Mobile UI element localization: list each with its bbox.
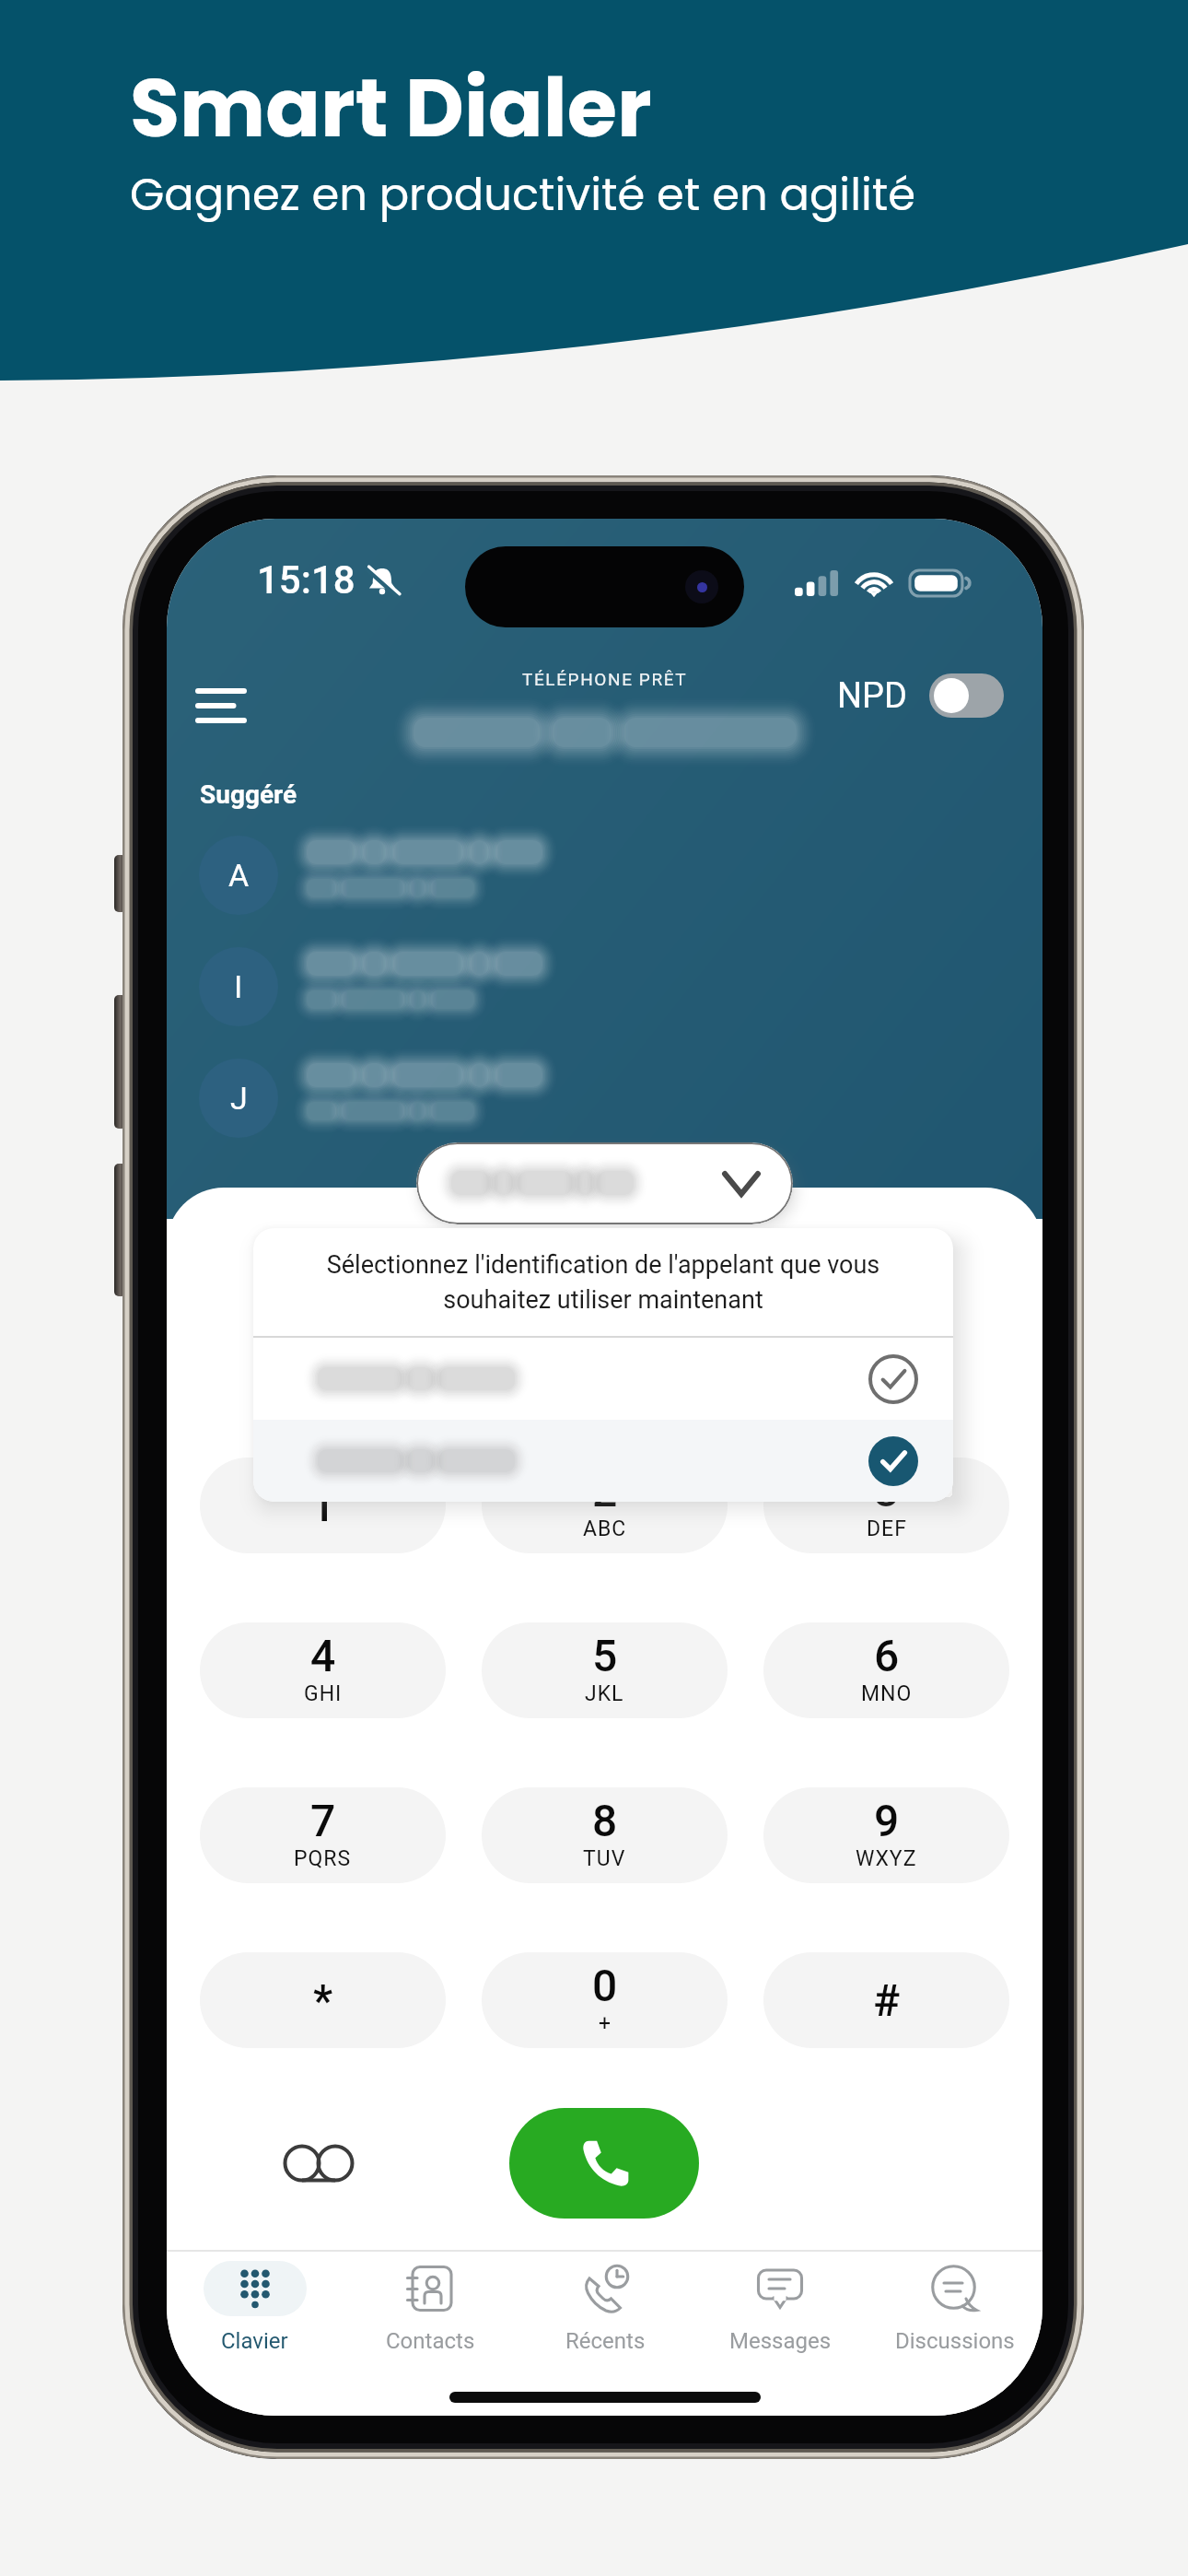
button[interactable]: 8 xyxy=(482,1787,728,1883)
staticText: ABC xyxy=(583,1516,627,1541)
staticText: 2 xyxy=(592,1465,618,1516)
button[interactable] xyxy=(253,1338,953,1420)
staticText: GHI xyxy=(304,1681,343,1706)
button[interactable]: 5 xyxy=(482,1622,728,1718)
button[interactable]: Appeler xyxy=(509,2108,699,2219)
staticText: 3 xyxy=(874,1465,900,1516)
button[interactable]: Clavier xyxy=(167,2252,343,2381)
staticText: 5 xyxy=(592,1630,618,1681)
staticText: NPD xyxy=(837,675,908,717)
button[interactable]: 3 xyxy=(763,1458,1009,1553)
staticText: I xyxy=(234,968,243,1005)
staticText: 0 xyxy=(592,1960,618,2011)
staticText: 6 xyxy=(874,1630,900,1681)
staticText: A xyxy=(228,857,250,894)
staticText: * xyxy=(313,1974,333,2026)
staticText: TÉLÉPHONE PRÊT xyxy=(522,669,688,689)
staticText: Récents xyxy=(565,2328,646,2354)
staticText: DEF xyxy=(867,1516,907,1541)
button[interactable] xyxy=(253,1420,953,1502)
staticText: J xyxy=(230,1080,248,1117)
button[interactable]: Menu xyxy=(181,666,261,745)
staticText: 1 xyxy=(310,1480,336,1531)
button[interactable]: 7 xyxy=(200,1787,446,1883)
button[interactable]: NPD xyxy=(837,664,1004,727)
button[interactable]: 0 xyxy=(482,1952,728,2048)
staticText: Gagnez en productivité et en agilité xyxy=(130,164,916,226)
staticText: Contacts xyxy=(386,2328,475,2354)
staticText: 15:18 xyxy=(257,557,355,603)
staticText: 4 xyxy=(310,1630,336,1681)
staticText: Messages xyxy=(729,2328,832,2354)
staticText: WXYZ xyxy=(856,1846,917,1871)
staticText: TUV xyxy=(583,1846,626,1871)
button[interactable]: I xyxy=(167,931,1042,1042)
button[interactable]: * xyxy=(200,1952,446,2048)
button[interactable]: 9 xyxy=(763,1787,1009,1883)
staticText: 8 xyxy=(592,1795,618,1846)
staticText: PQRS xyxy=(294,1846,352,1871)
button[interactable]: Récents xyxy=(518,2252,693,2381)
button[interactable]: 6 xyxy=(763,1622,1009,1718)
staticText: Discussions xyxy=(895,2328,1015,2354)
button[interactable]: 1 xyxy=(200,1458,446,1553)
staticText: Sélectionnez l'identification de l'appel… xyxy=(277,1250,929,1315)
staticText: Clavier xyxy=(221,2328,288,2354)
button[interactable]: Messagerie vocale xyxy=(274,2119,363,2207)
staticText: + xyxy=(599,2011,612,2036)
button[interactable]: 4 xyxy=(200,1622,446,1718)
staticText: Smart Dialer xyxy=(130,52,652,165)
button[interactable]: A xyxy=(167,820,1042,931)
button[interactable]: Messages xyxy=(693,2252,868,2381)
staticText: Suggéré xyxy=(200,779,297,810)
button[interactable]: Discussions xyxy=(868,2252,1042,2381)
button[interactable]: J xyxy=(167,1043,1042,1153)
button[interactable] xyxy=(416,1142,793,1224)
staticText: JKL xyxy=(585,1681,624,1706)
staticText: 7 xyxy=(310,1795,336,1846)
button[interactable]: Contacts xyxy=(343,2252,518,2381)
staticText: 9 xyxy=(874,1795,900,1846)
staticText: MNO xyxy=(861,1681,913,1706)
button[interactable]: 2 xyxy=(482,1458,728,1553)
button[interactable]: # xyxy=(763,1952,1009,2048)
staticText: # xyxy=(873,1974,901,2026)
